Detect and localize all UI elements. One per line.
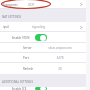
staticText: Refresh bbox=[23, 67, 34, 71]
staticText: NAT SETTINGS bbox=[2, 15, 22, 19]
staticText: ipv4 bbox=[3, 25, 9, 29]
button[interactable]: Enable STUN bbox=[0, 32, 86, 43]
staticText: 30 bbox=[58, 67, 62, 71]
staticText: skun.zoipar.com bbox=[48, 46, 72, 50]
staticText: Port bbox=[23, 56, 29, 60]
button[interactable]: Refresh bbox=[0, 63, 86, 74]
staticText: Server bbox=[23, 46, 32, 50]
staticText: Transports bbox=[3, 3, 18, 7]
staticText: UDP bbox=[28, 3, 35, 7]
button[interactable]: ipv4 bbox=[0, 22, 86, 32]
button[interactable]: Toggle bbox=[35, 87, 47, 90]
staticText: signaling bbox=[32, 25, 46, 29]
button[interactable]: Transports bbox=[0, 0, 86, 9]
staticText: Enable STUN bbox=[12, 36, 30, 40]
button[interactable]: Toggle bbox=[35, 34, 47, 41]
staticText: 3478 bbox=[56, 56, 64, 60]
button[interactable]: Port bbox=[0, 53, 86, 63]
button[interactable]: Enable ICE bbox=[0, 87, 86, 90]
staticText: Enable ICE bbox=[12, 87, 27, 90]
staticText: ADDITIONAL SETTINGS bbox=[2, 80, 33, 84]
button[interactable]: Server bbox=[0, 43, 86, 53]
